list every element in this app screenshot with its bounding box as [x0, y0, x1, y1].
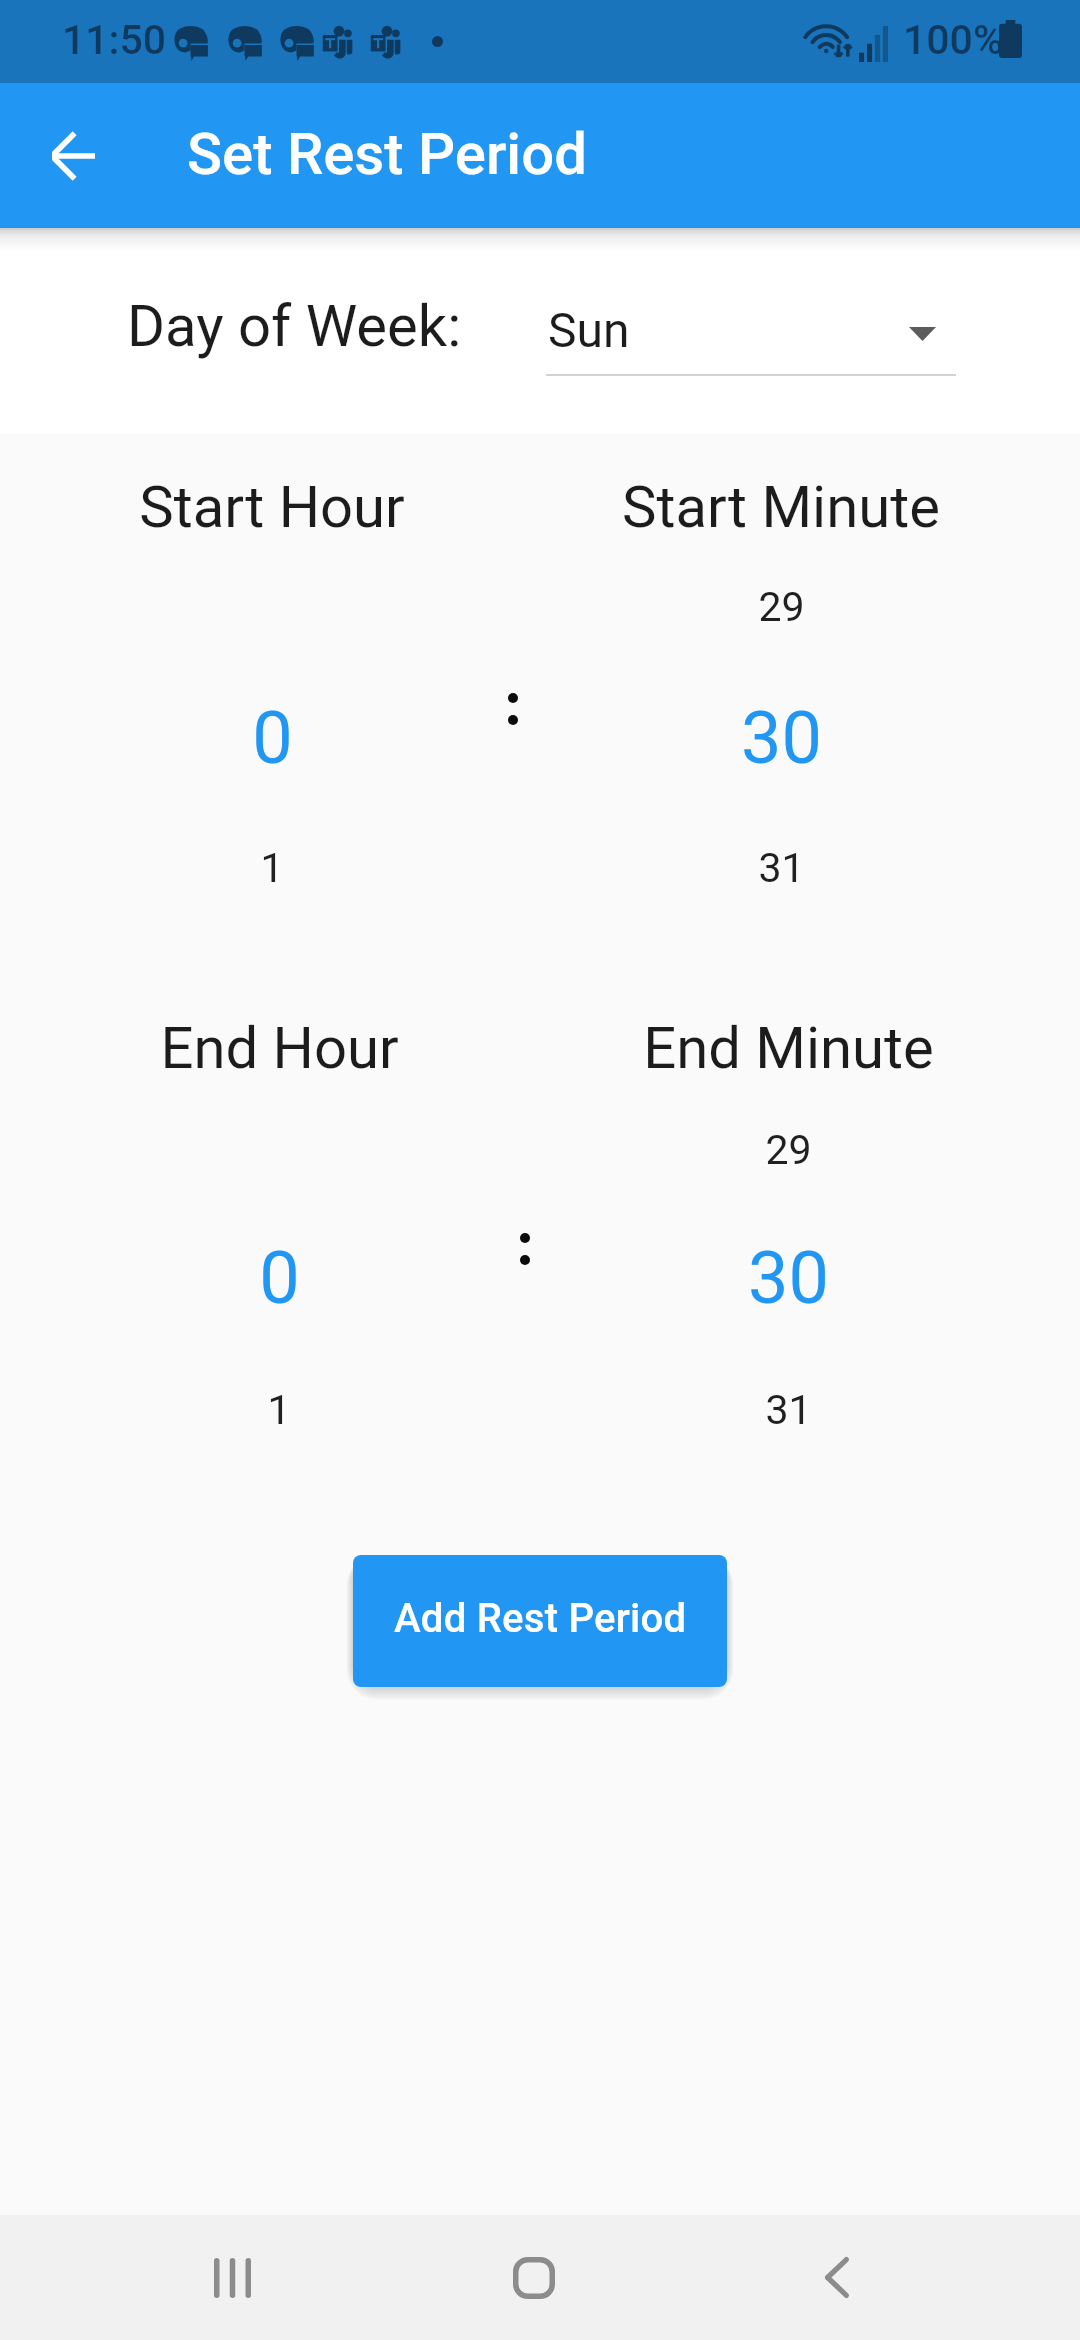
staticText: 30 — [748, 1236, 829, 1320]
staticText: 29 — [758, 583, 805, 631]
button[interactable]: Navigate up — [9, 83, 138, 228]
staticText: Day of Week: — [127, 292, 462, 360]
button[interactable]: Back — [777, 2215, 897, 2340]
button[interactable]: Start Minute — [646, 552, 916, 913]
staticText: Set Rest Period — [187, 120, 587, 188]
staticText: 31 — [765, 1386, 812, 1434]
button[interactable]: Day of week selector — [546, 270, 956, 380]
staticText: Start Minute — [622, 473, 940, 541]
button[interactable]: Home — [474, 2215, 594, 2340]
staticText: End Minute — [643, 1014, 934, 1082]
button[interactable]: End Minute — [653, 1095, 923, 1454]
button[interactable]: End Hour — [144, 1095, 414, 1454]
staticText: 30 — [741, 696, 822, 780]
staticText: 1 — [260, 844, 284, 892]
staticText: 1 — [267, 1386, 291, 1434]
staticText: Sun — [548, 302, 630, 358]
staticText: Add Rest Period — [394, 1595, 687, 1642]
staticText: 11:50 — [62, 16, 167, 64]
staticText: 0 — [259, 1236, 300, 1320]
staticText: 0 — [252, 696, 293, 780]
staticText: 31 — [758, 844, 805, 892]
button[interactable]: Add Rest Period — [353, 1555, 727, 1687]
staticText: End Hour — [160, 1014, 399, 1082]
staticText: 29 — [765, 1126, 812, 1174]
staticText: 100% — [903, 16, 1004, 64]
button[interactable]: Recent apps — [172, 2215, 292, 2340]
button[interactable]: Start Hour — [137, 552, 407, 913]
staticText: Start Hour — [139, 473, 405, 541]
